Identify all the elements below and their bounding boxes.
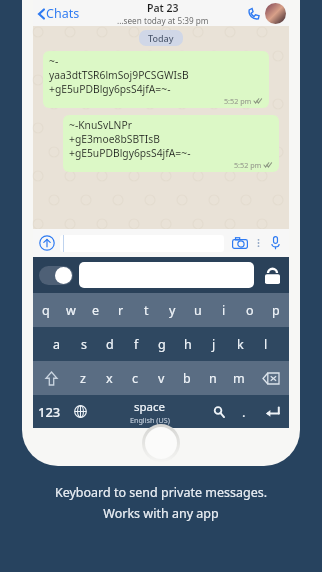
staticText: ~-	[49, 54, 59, 68]
staticText: f	[134, 336, 139, 353]
staticText: ...seen today at 5:39 pm	[117, 15, 209, 26]
button[interactable]: .	[233, 395, 255, 428]
button[interactable]: Send up	[38, 234, 56, 252]
staticText: u	[194, 302, 202, 319]
button[interactable]: t	[133, 293, 159, 327]
staticText: w	[66, 302, 76, 319]
button[interactable]: Search	[205, 395, 233, 428]
button[interactable]: Enter	[255, 395, 289, 428]
button[interactable]: j	[201, 327, 227, 361]
staticText: v	[158, 370, 165, 387]
staticText: b	[183, 370, 191, 387]
button[interactable]: ~-KnuSvLNPr	[63, 115, 279, 172]
button[interactable]: k	[227, 327, 253, 361]
staticText: space	[134, 399, 166, 415]
button[interactable]: l	[253, 327, 279, 361]
staticText: s	[81, 336, 87, 353]
staticText: h	[184, 336, 192, 353]
button[interactable]: w	[58, 293, 83, 327]
button[interactable]	[79, 262, 254, 288]
button[interactable]: z	[70, 361, 96, 395]
staticText: 5:52 pm	[234, 160, 262, 170]
button[interactable]: c	[122, 361, 148, 395]
button[interactable]: Contact photo	[265, 3, 286, 24]
button[interactable]: Camera	[230, 233, 250, 253]
button[interactable]	[60, 235, 224, 252]
button[interactable]: v	[148, 361, 174, 395]
button[interactable]: r	[108, 293, 133, 327]
button[interactable]: x	[96, 361, 122, 395]
staticText: English (US)	[130, 415, 170, 425]
staticText: ~-KnuSvLNPr	[69, 118, 132, 132]
staticText: +gE3moe8bSBTIsB	[69, 132, 160, 146]
staticText: c	[132, 370, 139, 387]
staticText: yaa3dtTSR6lmSoj9PCSGWIsB	[49, 68, 189, 82]
button[interactable]: g	[149, 327, 175, 361]
staticText: q	[42, 302, 50, 319]
button[interactable]: y	[159, 293, 185, 327]
staticText: Pat 23	[147, 1, 179, 15]
staticText: Works with any app	[0, 505, 322, 522]
staticText: .	[242, 403, 246, 421]
button[interactable]: o	[237, 293, 263, 327]
button[interactable]: b	[174, 361, 200, 395]
button[interactable]: f	[123, 327, 149, 361]
button[interactable]: More	[253, 238, 263, 248]
staticText: j	[212, 336, 216, 353]
staticText: n	[209, 370, 217, 387]
staticText: p	[272, 302, 280, 319]
button[interactable]: d	[97, 327, 123, 361]
button[interactable]: Backspace	[252, 361, 289, 395]
button[interactable]: ~-	[43, 51, 269, 108]
button[interactable]: h	[175, 327, 201, 361]
staticText: 123	[38, 403, 61, 421]
button[interactable]: q	[33, 293, 58, 327]
staticText: t	[144, 302, 149, 319]
staticText: Today	[148, 32, 174, 44]
staticText: Chats	[46, 5, 80, 22]
staticText: k	[237, 336, 244, 353]
button[interactable]: Voice message	[266, 234, 284, 252]
staticText: +gE5uPDBlgy6psS4jfA=~-	[49, 82, 171, 96]
button[interactable]: Encryption toggle	[39, 266, 73, 285]
button[interactable]: i	[211, 293, 237, 327]
staticText: g	[158, 336, 166, 353]
button[interactable]: Call	[245, 5, 262, 22]
button[interactable]: Chats	[36, 5, 82, 22]
button[interactable]: Home button	[142, 424, 180, 462]
staticText: o	[246, 302, 254, 319]
staticText: Keyboard to send private messages.	[0, 484, 322, 501]
button[interactable]: m	[226, 361, 252, 395]
button[interactable]: Change language	[66, 395, 94, 428]
staticText: l	[264, 336, 268, 353]
button[interactable]: Lock	[261, 264, 283, 286]
staticText: r	[118, 302, 124, 319]
button[interactable]: p	[263, 293, 289, 327]
staticText: 5:52 pm	[224, 96, 252, 106]
button[interactable]: u	[185, 293, 211, 327]
button[interactable]: 123	[33, 395, 66, 428]
button[interactable]: Shift	[33, 361, 70, 395]
button[interactable]: e	[83, 293, 108, 327]
button[interactable]: space	[94, 395, 205, 428]
staticText: d	[106, 336, 114, 353]
staticText: z	[80, 370, 86, 387]
staticText: +gE5uPDBlgy6psS4jfA=~-	[69, 146, 191, 160]
button[interactable]: a	[43, 327, 70, 361]
button[interactable]: n	[200, 361, 226, 395]
staticText: m	[233, 370, 245, 387]
staticText: x	[106, 370, 113, 387]
staticText: e	[92, 302, 100, 319]
button[interactable]: s	[70, 327, 97, 361]
staticText: y	[169, 302, 176, 319]
staticText: i	[222, 302, 226, 319]
staticText: a	[53, 336, 61, 353]
